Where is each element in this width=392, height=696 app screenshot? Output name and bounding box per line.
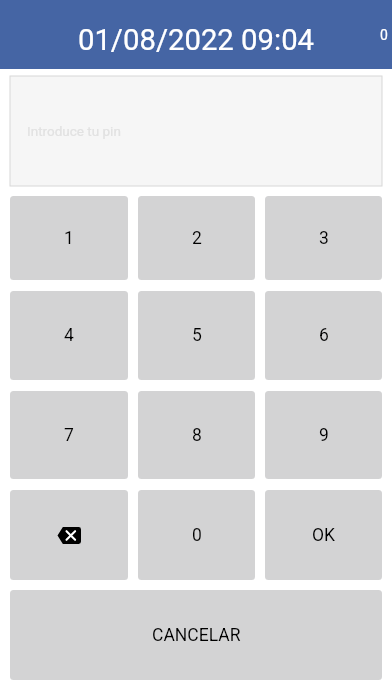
staticText: OK xyxy=(312,525,336,546)
staticText: 0 xyxy=(380,27,388,43)
button[interactable]: 9 xyxy=(265,391,382,479)
button[interactable]: 6 xyxy=(265,291,382,380)
staticText: 7 xyxy=(64,425,74,446)
staticText: 1 xyxy=(64,228,74,249)
button[interactable]: 7 xyxy=(10,391,128,479)
staticText: 2 xyxy=(192,228,202,249)
button[interactable]: OK xyxy=(265,490,382,580)
staticText: CANCELAR xyxy=(152,625,241,646)
staticText: 6 xyxy=(319,325,329,346)
staticText: 5 xyxy=(192,325,202,346)
staticText: 9 xyxy=(319,425,329,446)
staticText: 01/08/2022 09:04 xyxy=(0,23,392,57)
button[interactable]: Borrar xyxy=(10,490,128,580)
staticText: Introduce tu pin xyxy=(27,123,121,139)
button[interactable]: 4 xyxy=(10,291,128,380)
button[interactable]: 2 xyxy=(138,196,255,280)
button[interactable]: 0 xyxy=(138,490,255,580)
staticText: 4 xyxy=(64,325,74,346)
staticText: 0 xyxy=(192,525,202,546)
button[interactable]: CANCELAR xyxy=(10,590,382,680)
staticText: 8 xyxy=(192,425,202,446)
staticText: 3 xyxy=(319,228,329,249)
button[interactable]: 3 xyxy=(265,196,382,280)
button[interactable]: 8 xyxy=(138,391,255,479)
button[interactable]: 5 xyxy=(138,291,255,380)
button[interactable]: 1 xyxy=(10,196,128,280)
